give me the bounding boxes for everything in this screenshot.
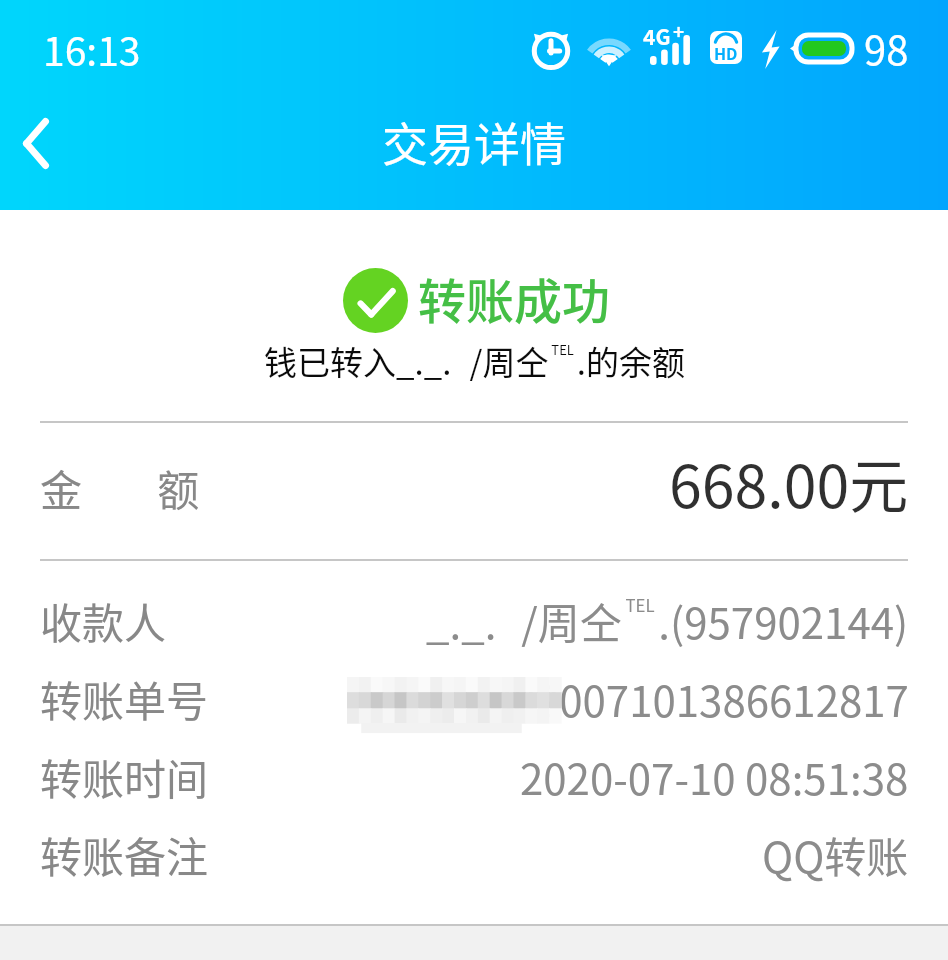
staticText: 转账时间 [40,746,209,807]
staticText: 1302007101386612817 [466,668,909,729]
staticText: 转账单号 [40,668,209,729]
staticText: 668.00元 [669,440,909,525]
staticText: _._. /周仝 TEL .(957902144) [426,590,909,651]
button[interactable]: 转账时间 [0,737,948,815]
staticText: QQ转账 [762,824,909,885]
button[interactable]: 转账备注 [0,815,948,893]
staticText: 收款人 [40,590,167,651]
staticText: 2020-07-10 08:51:38 [520,746,909,807]
staticText: 转账成功 [418,263,611,333]
staticText: 钱已转入_._. /周仝 TEL .的余额 [264,337,685,385]
staticText: 4G [643,21,671,51]
staticText: 金 额 [40,457,200,518]
button[interactable]: 收款人 [0,581,948,659]
button[interactable]: 转账单号 [0,659,948,737]
staticText: 交易详情 [382,108,566,175]
staticText: 16:13 [43,21,141,77]
staticText: 转账备注 [40,824,209,885]
button[interactable]: Back [0,100,78,210]
staticText: 98 [864,19,909,77]
staticText: HD [714,41,738,64]
staticText: + [673,17,685,45]
